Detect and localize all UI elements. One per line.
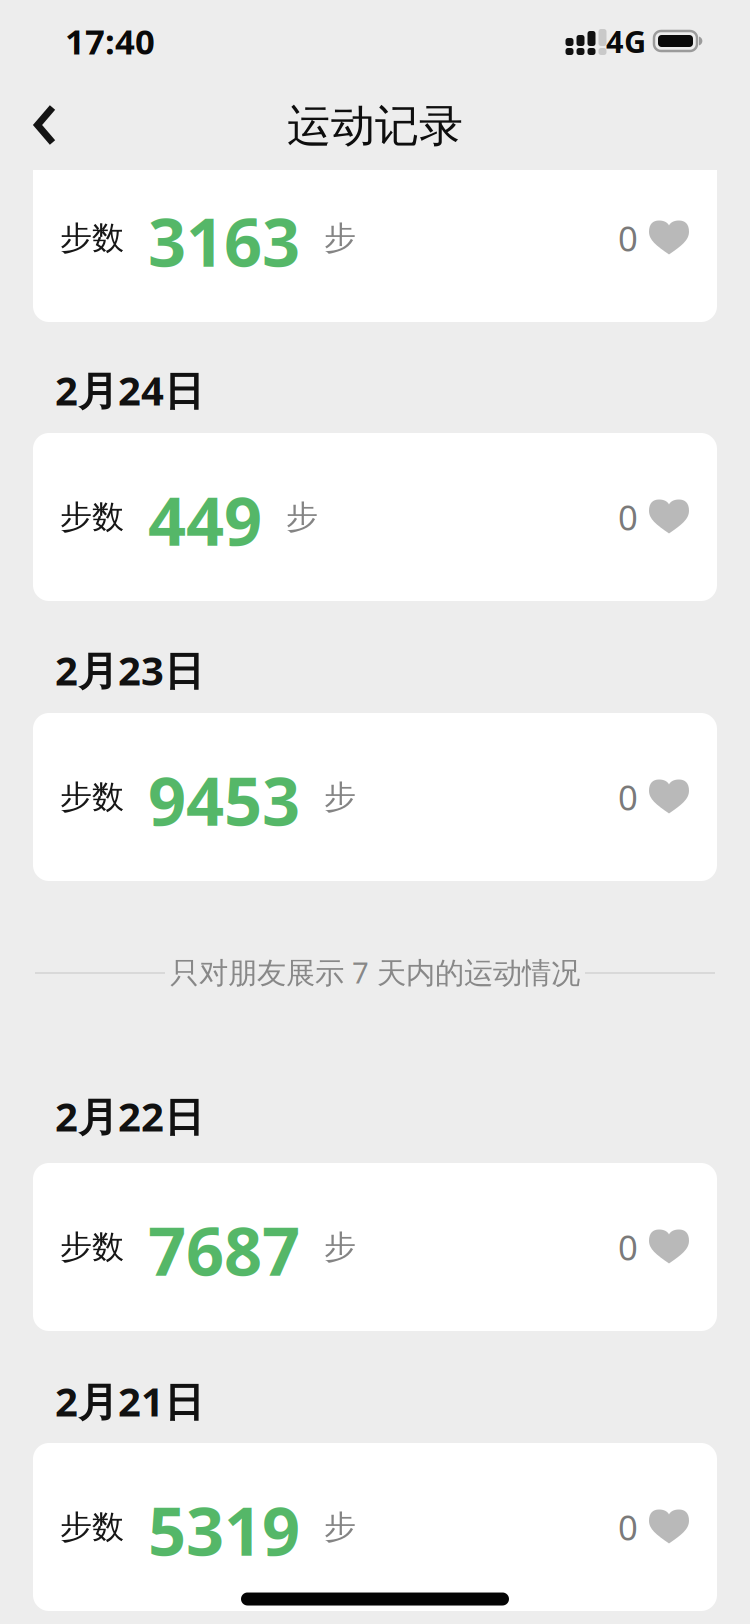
staticText: 步 xyxy=(286,497,318,537)
staticText: 0 xyxy=(618,1224,638,1270)
button[interactable]: Back xyxy=(0,80,86,170)
staticText: 2月23日 xyxy=(55,643,204,696)
button[interactable]: 步数 xyxy=(33,713,717,881)
staticText: 步数 xyxy=(60,497,124,537)
staticText: 步数 xyxy=(60,218,124,258)
staticText: 步 xyxy=(324,1227,356,1267)
staticText: 5319 xyxy=(148,1486,300,1574)
button[interactable]: 步数 xyxy=(33,154,717,322)
staticText: 0 xyxy=(618,494,638,540)
staticText: 步 xyxy=(324,218,356,258)
staticText: 步数 xyxy=(60,1507,124,1547)
staticText: 4G xyxy=(606,21,646,61)
button[interactable]: 步数 xyxy=(33,1163,717,1331)
staticText: 9453 xyxy=(148,756,300,844)
staticText: 2月22日 xyxy=(55,1089,204,1142)
staticText: 步数 xyxy=(60,1227,124,1267)
staticText: 0 xyxy=(618,1504,638,1550)
staticText: 只对朋友展示 7 天内的运动情况 xyxy=(170,952,580,991)
staticText: 步数 xyxy=(60,777,124,817)
button[interactable]: 步数 xyxy=(33,433,717,601)
staticText: 2月21日 xyxy=(55,1374,204,1427)
staticText: 2月24日 xyxy=(55,363,204,416)
staticText: 运动记录 xyxy=(287,99,463,153)
button[interactable]: 步数 xyxy=(33,1443,717,1611)
staticText: 17:40 xyxy=(65,18,155,64)
staticText: 0 xyxy=(618,215,638,261)
staticText: 步 xyxy=(324,1507,356,1547)
staticText: 7687 xyxy=(148,1206,300,1294)
staticText: 步 xyxy=(324,777,356,817)
staticText: 449 xyxy=(148,476,262,564)
staticText: 3163 xyxy=(148,197,300,285)
staticText: 0 xyxy=(618,774,638,820)
